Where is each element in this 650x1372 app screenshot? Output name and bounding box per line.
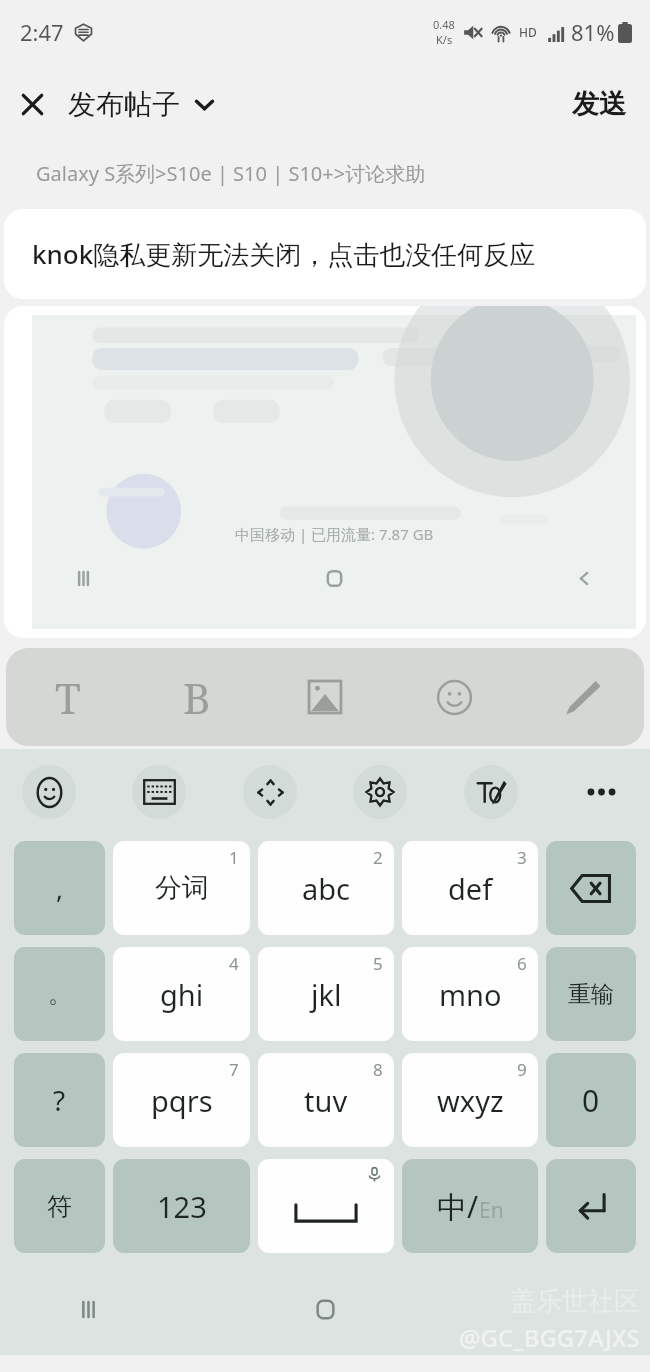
button[interactable]: mno [402, 947, 538, 1041]
staticText: T [55, 669, 81, 726]
staticText: ghi [160, 975, 204, 1014]
button[interactable]: 中国移动 | 已用流量: 7.87 GB [4, 306, 646, 638]
staticText: abc [302, 869, 351, 908]
staticText: HD [519, 24, 537, 40]
staticText: B [183, 669, 211, 726]
staticText: 。 [48, 979, 72, 1009]
staticText: 中/ [437, 1186, 479, 1227]
button[interactable]: knok隐私更新无法关闭，点击也没任何反应 [4, 209, 646, 299]
button[interactable]: 符 [14, 1159, 105, 1253]
staticText: def [448, 869, 493, 908]
button[interactable]: pqrs [113, 1053, 250, 1147]
staticText: pqrs [151, 1081, 213, 1120]
button[interactable]: def [402, 841, 538, 935]
staticText: Galaxy S系列>S10e | S10 | S10+>讨论求助 [36, 160, 426, 187]
staticText: 2:47 [20, 17, 64, 47]
staticText: 9 [517, 1058, 527, 1081]
staticText: 符 [47, 1191, 72, 1222]
staticText: 2 [373, 846, 383, 869]
button[interactable]: 发送 [548, 75, 650, 133]
staticText: wxyz [437, 1081, 504, 1120]
staticText: 7 [229, 1058, 239, 1081]
button[interactable]: Keyboard layout [132, 765, 186, 819]
staticText: 123 [157, 1187, 207, 1226]
button[interactable]: Bold [159, 653, 235, 741]
button[interactable]: ghi [113, 947, 250, 1041]
staticText: , [56, 871, 63, 906]
staticText: 4 [229, 952, 239, 975]
button[interactable]: Settings [353, 765, 407, 819]
button[interactable]: Home [291, 1275, 359, 1343]
staticText: 重输 [568, 980, 614, 1009]
button[interactable]: Emoji [416, 653, 492, 741]
staticText: En [479, 1196, 504, 1225]
button[interactable]: tuv [258, 1053, 394, 1147]
staticText: 81% [571, 17, 615, 47]
button[interactable]: Galaxy S系列>S10e | S10 | S10+>讨论求助 [0, 144, 650, 202]
staticText: @GC_BGG7AJXS [459, 1321, 640, 1354]
staticText: tuv [304, 1081, 348, 1120]
button[interactable]: More options [574, 765, 628, 819]
staticText: 发布帖子 [68, 87, 180, 122]
button[interactable]: Handwriting [464, 765, 518, 819]
staticText: 5 [373, 952, 383, 975]
button[interactable]: Backspace [546, 841, 636, 935]
button[interactable]: Close [0, 72, 64, 136]
button[interactable]: Insert image [287, 653, 363, 741]
button[interactable]: ? [14, 1053, 105, 1147]
staticText: 8 [373, 1058, 383, 1081]
button[interactable]: Back [528, 1275, 596, 1343]
button[interactable]: Resize keyboard [243, 765, 297, 819]
staticText: 发送 [572, 87, 626, 121]
button[interactable]: 分词 [113, 841, 250, 935]
button[interactable]: 发布帖子 [64, 79, 220, 130]
button[interactable]: 0 [546, 1053, 636, 1147]
button[interactable]: abc [258, 841, 394, 935]
button[interactable]: , [14, 841, 105, 935]
staticText: 3 [517, 846, 527, 869]
button[interactable]: Switch language [402, 1159, 538, 1253]
button[interactable]: 123 [113, 1159, 250, 1253]
staticText: knok隐私更新无法关闭，点击也没任何反应 [32, 236, 536, 272]
staticText: 0 [582, 1080, 600, 1121]
button[interactable]: jkl [258, 947, 394, 1041]
staticText: 中国移动 | 已用流量: 7.87 GB [235, 524, 434, 544]
button[interactable]: Emoji [22, 765, 76, 819]
staticText: 1 [229, 846, 239, 869]
staticText: mno [439, 975, 502, 1014]
button[interactable]: 。 [14, 947, 105, 1041]
button[interactable]: wxyz [402, 1053, 538, 1147]
staticText: K/s [436, 32, 453, 47]
button[interactable]: Recents [54, 1275, 122, 1343]
button[interactable]: Draw [544, 653, 620, 741]
button[interactable]: Enter [546, 1159, 636, 1253]
staticText: 6 [517, 952, 527, 975]
button[interactable]: Space [258, 1159, 394, 1253]
staticText: 0.48 [433, 17, 455, 32]
staticText: jkl [311, 975, 342, 1014]
staticText: ? [53, 1081, 66, 1119]
staticText: 分词 [155, 871, 209, 905]
button[interactable]: 重输 [546, 947, 636, 1041]
staticText: 盖乐世社区 [510, 1285, 640, 1318]
button[interactable]: Text style [30, 653, 106, 741]
